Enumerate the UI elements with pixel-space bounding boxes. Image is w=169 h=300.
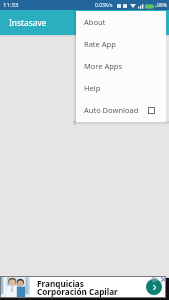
- staticText: Auto Download: [84, 105, 139, 115]
- button[interactable]: About: [76, 11, 166, 33]
- staticText: Corporación Capilar: [37, 286, 118, 297]
- button[interactable]: Franquicias: [0, 276, 166, 298]
- button[interactable]: Open advertisement: [146, 279, 162, 295]
- staticText: 11:53: [3, 1, 19, 9]
- staticText: 0.03K/s: [95, 2, 113, 9]
- staticText: Instasave: [9, 17, 47, 28]
- staticText: Franquicias: [37, 278, 84, 289]
- button[interactable]: Instasave: [0, 10, 169, 35]
- button[interactable]: Auto Download: [76, 99, 166, 121]
- button[interactable]: Help: [76, 77, 166, 99]
- staticText: 99%: [157, 2, 167, 9]
- staticText: About: [84, 17, 106, 27]
- staticText: Rate App: [84, 39, 116, 49]
- button[interactable]: More Apps: [76, 55, 166, 77]
- staticText: More Apps: [84, 61, 123, 71]
- button[interactable]: Rate App: [76, 33, 166, 55]
- staticText: Help: [84, 83, 101, 93]
